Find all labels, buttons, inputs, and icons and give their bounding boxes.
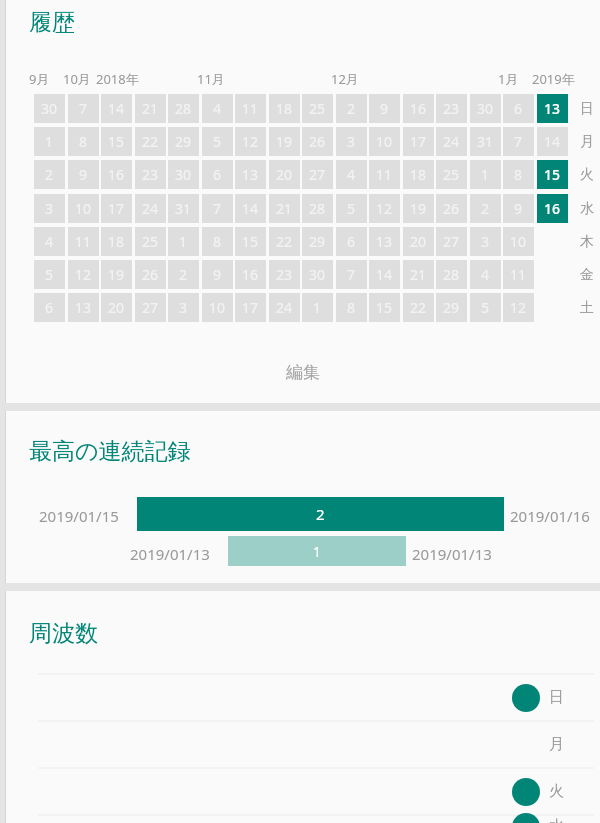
button[interactable]: 4 bbox=[34, 227, 65, 256]
button[interactable]: 15 bbox=[537, 160, 568, 189]
button[interactable]: 25 bbox=[436, 160, 467, 189]
button[interactable]: 5 bbox=[34, 260, 65, 289]
button[interactable]: 31 bbox=[470, 127, 501, 156]
button[interactable]: 31 bbox=[168, 194, 199, 223]
button[interactable]: 10 bbox=[202, 293, 233, 322]
button[interactable]: 9 bbox=[202, 260, 233, 289]
button[interactable]: 13 bbox=[369, 227, 400, 256]
button[interactable]: 24 bbox=[135, 194, 166, 223]
button[interactable]: 17 bbox=[403, 127, 434, 156]
button[interactable]: 20 bbox=[101, 293, 132, 322]
button[interactable]: 5 bbox=[470, 293, 501, 322]
button[interactable]: 8 bbox=[202, 227, 233, 256]
button[interactable]: 10 bbox=[369, 127, 400, 156]
button[interactable]: 12 bbox=[235, 127, 266, 156]
button[interactable]: 14 bbox=[101, 94, 132, 123]
button[interactable]: 26 bbox=[302, 127, 333, 156]
button[interactable]: 15 bbox=[235, 227, 266, 256]
button[interactable]: 21 bbox=[135, 94, 166, 123]
button[interactable]: 4 bbox=[202, 94, 233, 123]
button[interactable]: 22 bbox=[269, 227, 300, 256]
button[interactable]: 3 bbox=[470, 227, 501, 256]
button[interactable]: 15 bbox=[369, 293, 400, 322]
button[interactable]: 16 bbox=[537, 194, 568, 223]
button[interactable]: 20 bbox=[403, 227, 434, 256]
button[interactable]: 9 bbox=[369, 94, 400, 123]
button[interactable]: 8 bbox=[336, 293, 367, 322]
button[interactable]: 19 bbox=[403, 194, 434, 223]
button[interactable]: 4 bbox=[336, 160, 367, 189]
button[interactable]: 21 bbox=[269, 194, 300, 223]
button[interactable]: 12 bbox=[68, 260, 99, 289]
button[interactable]: 16 bbox=[101, 160, 132, 189]
button[interactable]: 19 bbox=[101, 260, 132, 289]
button[interactable]: 11 bbox=[235, 94, 266, 123]
button[interactable]: 12 bbox=[369, 194, 400, 223]
button[interactable]: 13 bbox=[68, 293, 99, 322]
button[interactable]: 17 bbox=[235, 293, 266, 322]
button[interactable]: 27 bbox=[302, 160, 333, 189]
button[interactable]: 16 bbox=[235, 260, 266, 289]
button[interactable]: 22 bbox=[403, 293, 434, 322]
button[interactable]: 13 bbox=[537, 94, 568, 123]
button[interactable]: 2 bbox=[168, 260, 199, 289]
button[interactable]: 22 bbox=[135, 127, 166, 156]
button[interactable]: 3 bbox=[168, 293, 199, 322]
button[interactable]: 10 bbox=[68, 194, 99, 223]
button[interactable]: 14 bbox=[235, 194, 266, 223]
button[interactable]: 24 bbox=[269, 293, 300, 322]
button[interactable]: 14 bbox=[369, 260, 400, 289]
button[interactable]: 12 bbox=[503, 293, 534, 322]
button[interactable]: 30 bbox=[34, 94, 65, 123]
button[interactable]: 26 bbox=[436, 194, 467, 223]
button[interactable]: 24 bbox=[436, 127, 467, 156]
button[interactable]: 3 bbox=[336, 127, 367, 156]
button[interactable]: 23 bbox=[135, 160, 166, 189]
button[interactable]: 10 bbox=[503, 227, 534, 256]
button[interactable]: 30 bbox=[168, 160, 199, 189]
button[interactable]: 2 bbox=[336, 94, 367, 123]
button[interactable]: 26 bbox=[135, 260, 166, 289]
button[interactable]: 2 bbox=[137, 497, 504, 531]
button[interactable]: 28 bbox=[168, 94, 199, 123]
button[interactable]: 8 bbox=[503, 160, 534, 189]
button[interactable]: 6 bbox=[503, 94, 534, 123]
button[interactable]: 5 bbox=[336, 194, 367, 223]
button[interactable]: 29 bbox=[436, 293, 467, 322]
button[interactable]: 20 bbox=[269, 160, 300, 189]
button[interactable]: 23 bbox=[436, 94, 467, 123]
button[interactable]: 28 bbox=[302, 194, 333, 223]
button[interactable]: 2 bbox=[34, 160, 65, 189]
button[interactable]: 18 bbox=[403, 160, 434, 189]
button[interactable]: 17 bbox=[101, 194, 132, 223]
button[interactable]: 29 bbox=[302, 227, 333, 256]
button[interactable]: 1 bbox=[228, 536, 406, 566]
button[interactable]: 15 bbox=[101, 127, 132, 156]
button[interactable]: 27 bbox=[135, 293, 166, 322]
button[interactable]: 13 bbox=[235, 160, 266, 189]
button[interactable]: 19 bbox=[269, 127, 300, 156]
button[interactable]: 6 bbox=[336, 227, 367, 256]
button[interactable]: 9 bbox=[68, 160, 99, 189]
button[interactable]: 5 bbox=[202, 127, 233, 156]
button[interactable]: 28 bbox=[436, 260, 467, 289]
button[interactable]: 18 bbox=[269, 94, 300, 123]
button[interactable]: 6 bbox=[34, 293, 65, 322]
button[interactable]: 9 bbox=[503, 194, 534, 223]
button[interactable]: 16 bbox=[403, 94, 434, 123]
button[interactable]: 編集 bbox=[243, 352, 363, 392]
button[interactable]: 11 bbox=[68, 227, 99, 256]
button[interactable]: 4 bbox=[470, 260, 501, 289]
button[interactable]: 27 bbox=[436, 227, 467, 256]
button[interactable]: 11 bbox=[503, 260, 534, 289]
button[interactable]: 21 bbox=[403, 260, 434, 289]
button[interactable]: 30 bbox=[470, 94, 501, 123]
button[interactable]: 30 bbox=[302, 260, 333, 289]
button[interactable]: 2 bbox=[470, 194, 501, 223]
